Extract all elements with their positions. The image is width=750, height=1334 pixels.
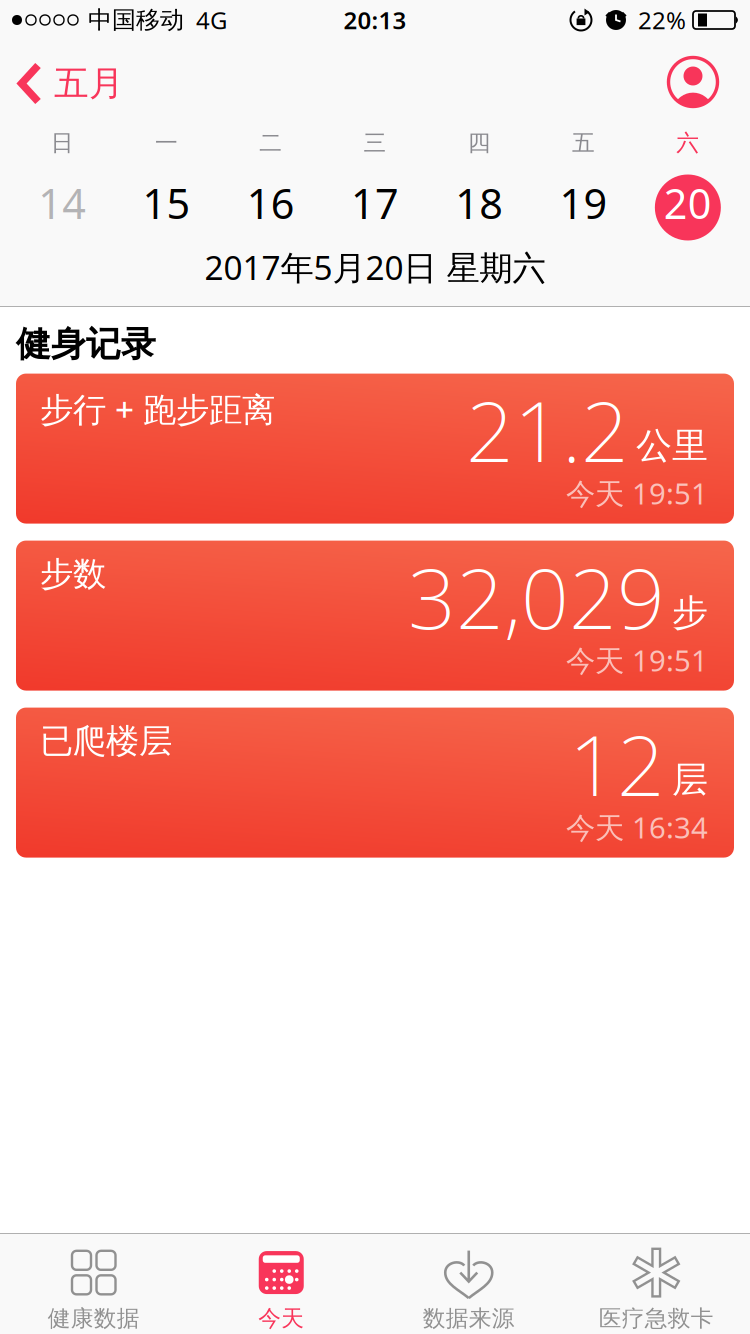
button[interactable] bbox=[667, 56, 750, 108]
staticText: 今天 19:51 bbox=[566, 474, 708, 513]
staticText: 2017年5月20日 星期六 bbox=[204, 245, 545, 289]
staticText: 20 bbox=[664, 176, 712, 230]
staticText: 32,029 bbox=[408, 541, 665, 652]
staticText: 4G bbox=[196, 4, 227, 36]
staticText: 今天 19:51 bbox=[566, 641, 708, 680]
button[interactable]: 17 bbox=[323, 178, 427, 232]
staticText: 医疗急救卡 bbox=[599, 1305, 714, 1332]
button[interactable]: 五月 bbox=[0, 61, 124, 103]
button[interactable]: 18 bbox=[427, 178, 531, 232]
button[interactable]: 医疗急救卡 bbox=[562, 1236, 750, 1332]
staticText: 五月 bbox=[54, 62, 124, 105]
button[interactable]: 步行 + 跑步距离 bbox=[16, 374, 734, 524]
staticText: 四 bbox=[468, 129, 491, 157]
staticText: 21.2 bbox=[466, 374, 629, 485]
staticText: 步数 bbox=[40, 554, 106, 594]
staticText: 公里 bbox=[636, 424, 708, 468]
staticText: 22% bbox=[638, 4, 686, 36]
staticText: 五 bbox=[572, 129, 595, 157]
staticText: 今天 bbox=[258, 1305, 304, 1332]
button[interactable]: 19 bbox=[531, 178, 636, 232]
staticText: 已爬楼层 bbox=[40, 721, 172, 761]
staticText: 18 bbox=[455, 176, 503, 230]
staticText: 20:13 bbox=[343, 4, 406, 36]
staticText: 二 bbox=[259, 129, 282, 157]
staticText: 健康数据 bbox=[48, 1305, 140, 1332]
staticText: 今天 16:34 bbox=[566, 808, 708, 847]
staticText: 中国移动 bbox=[88, 5, 184, 35]
staticText: 日 bbox=[51, 129, 74, 157]
staticText: 16 bbox=[247, 176, 295, 230]
staticText: 三 bbox=[363, 129, 386, 157]
button[interactable]: 14 bbox=[10, 178, 114, 232]
button[interactable]: 已爬楼层 bbox=[16, 708, 734, 858]
staticText: 12 bbox=[569, 708, 665, 819]
staticText: 19 bbox=[560, 176, 608, 230]
staticText: 一 bbox=[155, 129, 178, 157]
button[interactable]: 16 bbox=[219, 178, 323, 232]
button[interactable]: 健康数据 bbox=[0, 1236, 187, 1332]
button[interactable]: 今天 bbox=[187, 1236, 375, 1332]
staticText: 17 bbox=[351, 176, 399, 230]
staticText: 14 bbox=[38, 176, 86, 230]
staticText: 六 bbox=[676, 129, 699, 157]
staticText: 数据来源 bbox=[423, 1305, 515, 1332]
staticText: 步 bbox=[672, 591, 708, 635]
staticText: 步行 + 跑步距离 bbox=[40, 387, 275, 431]
button[interactable]: 15 bbox=[114, 178, 219, 232]
button[interactable]: 数据来源 bbox=[375, 1236, 562, 1332]
button[interactable]: 20 bbox=[636, 172, 740, 238]
staticText: 15 bbox=[142, 176, 190, 230]
staticText: 层 bbox=[672, 758, 708, 802]
staticText: 健身记录 bbox=[16, 323, 156, 366]
button[interactable]: 步数 bbox=[16, 541, 734, 691]
